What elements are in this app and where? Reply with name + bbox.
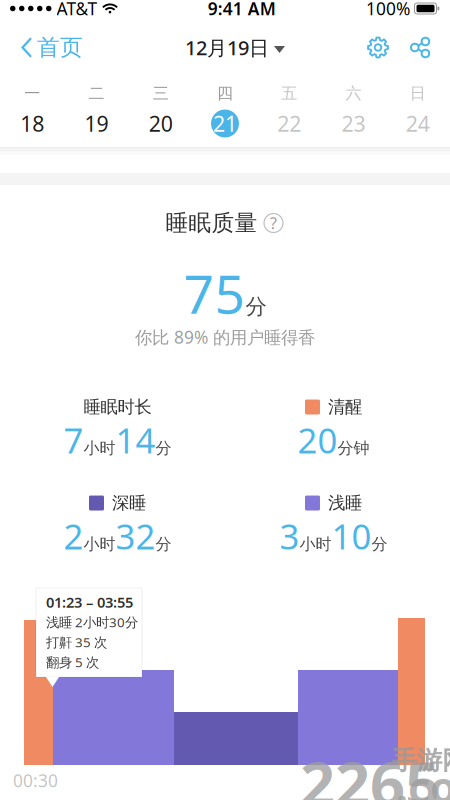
button[interactable]: 二 xyxy=(64,76,129,140)
button[interactable]: 12月19日 xyxy=(175,25,275,69)
staticText: 100% xyxy=(366,0,410,20)
staticText: 睡眠时长 xyxy=(83,396,151,418)
staticText: 小时 xyxy=(83,534,115,554)
staticText: 01:23 – 03:55 xyxy=(46,592,133,612)
staticText: AT&T xyxy=(56,0,97,20)
staticText: 清醒 xyxy=(328,396,362,418)
staticText: 日 xyxy=(410,84,426,103)
staticText: 小时 xyxy=(83,438,115,458)
staticText: 首页 xyxy=(37,34,83,61)
staticText: 2265 xyxy=(300,742,440,800)
staticText: 12月19日 xyxy=(185,34,269,61)
staticText: 分 xyxy=(155,438,171,458)
staticText: 2 xyxy=(63,513,83,559)
staticText: 深睡 xyxy=(112,492,146,514)
staticText: 14 xyxy=(115,417,155,463)
staticText: 睡眠质量 xyxy=(165,209,257,237)
staticText: 翻身 5 次 xyxy=(46,653,99,671)
staticText: 浅睡 2小时30分 xyxy=(46,613,138,631)
staticText: 18 xyxy=(20,109,44,138)
staticText: 3 xyxy=(279,513,299,559)
staticText: 32 xyxy=(115,513,155,559)
button[interactable]: 六 xyxy=(321,76,386,140)
staticText: 你比 89% 的用户睡得香 xyxy=(135,325,315,348)
staticText: 7 xyxy=(63,417,83,463)
staticText: 9:41 AM xyxy=(208,0,276,20)
staticText: ? xyxy=(270,212,277,234)
staticText: 分 xyxy=(155,534,171,554)
staticText: 打鼾 35 次 xyxy=(46,633,107,651)
staticText: 24 xyxy=(406,109,430,138)
staticText: 20 xyxy=(149,109,173,138)
staticText: 21 xyxy=(213,109,237,138)
staticText: 六 xyxy=(346,84,362,103)
staticText: 分 xyxy=(371,534,387,554)
staticText: 23 xyxy=(342,109,366,138)
staticText: 小时 xyxy=(299,534,331,554)
button[interactable]: About sleep quality xyxy=(262,212,284,234)
staticText: 19 xyxy=(84,109,108,138)
button[interactable]: Settings xyxy=(356,25,400,69)
button[interactable]: Share xyxy=(400,25,440,69)
staticText: 00:30 xyxy=(13,769,58,792)
staticText: 10 xyxy=(331,513,371,559)
staticText: 分 xyxy=(245,293,266,320)
staticText: 22 xyxy=(277,109,301,138)
staticText: 手游网 xyxy=(392,745,450,776)
button[interactable]: 五 xyxy=(257,76,321,140)
button[interactable]: 日 xyxy=(386,76,450,140)
staticText: 三 xyxy=(153,84,169,103)
staticText: 浅睡 xyxy=(328,492,362,514)
button[interactable]: 四 xyxy=(193,76,257,140)
staticText: 分钟 xyxy=(337,438,369,458)
staticText: 一 xyxy=(24,84,40,103)
button[interactable]: 首页 xyxy=(0,25,95,69)
button[interactable]: 三 xyxy=(129,76,193,140)
staticText: 20 xyxy=(297,417,337,463)
staticText: 二 xyxy=(88,84,104,103)
staticText: 75 xyxy=(183,258,245,328)
staticText: 五 xyxy=(281,84,297,103)
button[interactable]: 一 xyxy=(0,76,64,140)
staticText: 四 xyxy=(217,84,233,103)
staticText: .com xyxy=(396,758,450,800)
